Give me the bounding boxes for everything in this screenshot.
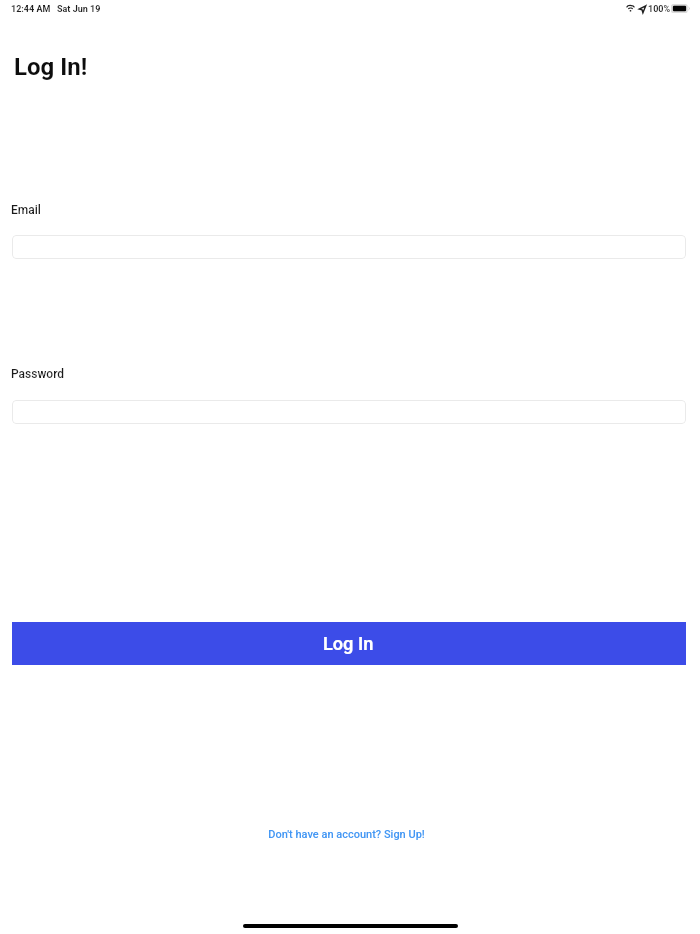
staticText: Log In: [323, 633, 374, 654]
staticText: Log In!: [14, 53, 88, 81]
button[interactable]: Email input field: [12, 235, 686, 259]
staticText: 100%: [648, 4, 671, 15]
button[interactable]: Password input field: [12, 400, 686, 424]
staticText: Sat Jun 19: [57, 4, 101, 15]
staticText: Don't have an account? Sign Up!: [268, 828, 425, 841]
staticText: 12:44 AM: [11, 4, 51, 15]
button[interactable]: Don't have an account? Sign Up!: [268, 828, 425, 841]
staticText: Password: [11, 367, 65, 381]
staticText: Email: [11, 203, 41, 217]
button[interactable]: Log In: [12, 622, 686, 665]
other: Location in use: [639, 5, 646, 13]
other: Battery full: [671, 4, 690, 13]
other: Wi-Fi connected: [626, 4, 635, 12]
